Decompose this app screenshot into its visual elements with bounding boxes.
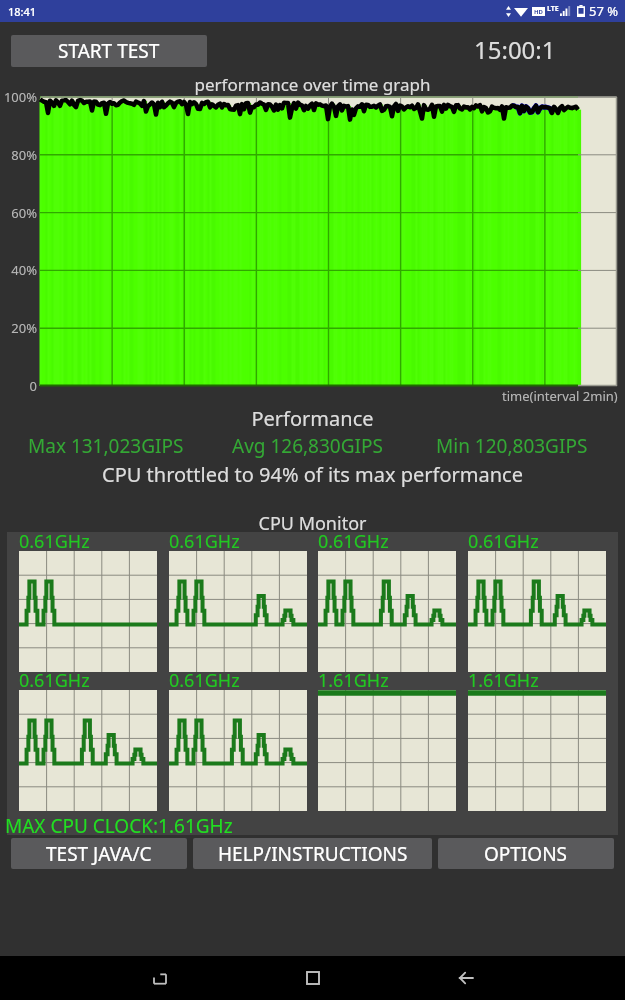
staticText: CPU throttled to 94% of its max performa… bbox=[0, 461, 625, 488]
staticText: Min 120,803GIPS bbox=[436, 433, 588, 459]
staticText: 1.61GHz bbox=[318, 668, 389, 693]
staticText: START TEST bbox=[58, 38, 160, 64]
staticText: Max 131,023GIPS bbox=[28, 433, 184, 459]
button[interactable]: START TEST bbox=[11, 35, 207, 67]
button[interactable]: Home bbox=[283, 956, 343, 1000]
staticText: 0 bbox=[0, 377, 37, 395]
button[interactable]: Back bbox=[436, 956, 496, 1000]
staticText: CPU Monitor bbox=[0, 511, 625, 536]
button[interactable]: TEST JAVA/C bbox=[11, 838, 187, 869]
button[interactable]: Recents bbox=[130, 956, 190, 1000]
staticText: HD bbox=[534, 8, 543, 16]
staticText: 57 % bbox=[589, 2, 619, 20]
staticText: 100% bbox=[0, 88, 37, 106]
staticText: 0.61GHz bbox=[318, 529, 389, 554]
button[interactable]: HELP/INSTRUCTIONS bbox=[193, 838, 432, 869]
staticText: time(interval 2min) bbox=[502, 387, 618, 405]
staticText: LTE bbox=[547, 4, 559, 14]
staticText: MAX CPU CLOCK:1.61GHz bbox=[5, 813, 233, 839]
staticText: OPTIONS bbox=[484, 841, 568, 867]
staticText: performance over time graph bbox=[0, 73, 625, 96]
staticText: 0.61GHz bbox=[468, 529, 539, 554]
staticText: 0.61GHz bbox=[19, 668, 90, 693]
staticText: HELP/INSTRUCTIONS bbox=[218, 841, 408, 867]
staticText: 0.61GHz bbox=[19, 529, 90, 554]
staticText: 15:00:1 bbox=[474, 33, 556, 66]
staticText: 40% bbox=[0, 261, 37, 279]
staticText: 80% bbox=[0, 146, 37, 164]
staticText: 1.61GHz bbox=[468, 668, 539, 693]
button[interactable]: OPTIONS bbox=[438, 838, 614, 869]
staticText: TEST JAVA/C bbox=[46, 841, 152, 867]
staticText: Avg 126,830GIPS bbox=[232, 433, 383, 459]
staticText: 0.61GHz bbox=[169, 668, 240, 693]
staticText: 20% bbox=[0, 319, 37, 337]
staticText: 18:41 bbox=[8, 4, 37, 19]
staticText: 60% bbox=[0, 204, 37, 222]
staticText: 0.61GHz bbox=[169, 529, 240, 554]
staticText: Performance bbox=[0, 405, 625, 432]
